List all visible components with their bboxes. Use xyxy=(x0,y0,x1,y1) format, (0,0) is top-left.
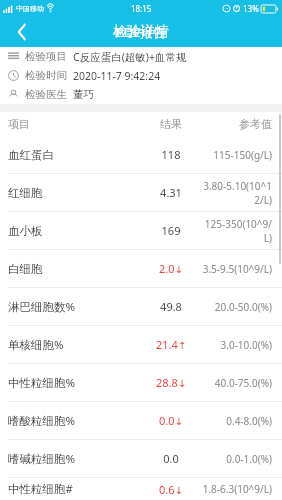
staticText: 0.0↓ xyxy=(140,413,202,428)
staticText: 4.31 xyxy=(140,185,202,200)
staticText: 169 xyxy=(140,223,202,238)
staticText: 18:15 xyxy=(131,3,152,14)
staticText: 21.4↑ xyxy=(140,337,202,352)
staticText: 白细胞 xyxy=(8,262,140,276)
staticText: 嗜碱粒细胞% xyxy=(8,451,140,467)
staticText: 检验医生 xyxy=(25,88,67,101)
staticText: 0.0-1.0(%) xyxy=(202,452,272,466)
button[interactable]: 嗜酸粒细胞% xyxy=(0,402,282,439)
staticText: 中性粒细胞% xyxy=(8,375,140,391)
staticText: 参考值 xyxy=(202,117,272,131)
staticText: 3.0-10.0(%) xyxy=(202,338,272,352)
staticText: 结果 xyxy=(140,117,202,131)
button[interactable]: 血小板 xyxy=(0,212,282,249)
staticText: 嗜酸粒细胞% xyxy=(8,413,140,429)
staticText: 1.8-6.3(10^9/L) xyxy=(202,482,272,496)
staticText: 中性粒细胞# xyxy=(8,481,140,497)
button[interactable]: 单核细胞% xyxy=(0,326,282,363)
staticText: 40.0-75.0(%) xyxy=(202,376,272,390)
button[interactable]: 中性粒细胞% xyxy=(0,364,282,401)
staticText: 淋巴细胞数% xyxy=(8,299,140,315)
staticText: 28.8↓ xyxy=(140,375,202,390)
staticText: 3.80-5.10(10^12/L) xyxy=(202,179,272,207)
staticText: 2.0↓ xyxy=(140,261,202,276)
staticText: 125-350(10^9/L) xyxy=(202,217,272,245)
button[interactable]: PDF报告 xyxy=(0,16,282,47)
staticText: PDF报告 xyxy=(116,23,167,41)
staticText: 检验项目 xyxy=(25,50,67,63)
staticText: 项目 xyxy=(8,117,140,131)
button[interactable]: 红细胞 xyxy=(0,174,282,211)
staticText: 董巧 xyxy=(73,88,94,101)
staticText: 红细胞 xyxy=(8,186,140,200)
staticText: 0.0 xyxy=(140,451,202,466)
staticText: 中国移动 xyxy=(16,4,44,13)
staticText: 20.0-50.0(%) xyxy=(202,300,272,314)
staticText: 0.4-8.0(%) xyxy=(202,414,272,428)
button[interactable]: 嗜碱粒细胞% xyxy=(0,440,282,477)
staticText: 118 xyxy=(140,147,202,162)
staticText: 0.6↓ xyxy=(140,482,202,497)
button[interactable]: 白细胞 xyxy=(0,250,282,287)
staticText: 3.5-9.5(10^9/L) xyxy=(202,262,272,276)
button[interactable]: 中性粒细胞# xyxy=(0,478,282,500)
button[interactable]: Back xyxy=(0,16,44,47)
staticText: 13% xyxy=(243,3,259,14)
staticText: 115-150(g/L) xyxy=(202,148,272,162)
staticText: 血小板 xyxy=(8,224,140,238)
staticText: 血红蛋白 xyxy=(8,148,140,162)
staticText: 单核细胞% xyxy=(8,337,140,353)
staticText: 2020-11-7 9:42:24 xyxy=(73,69,161,83)
staticText: 49.8 xyxy=(140,299,202,314)
button[interactable]: 血红蛋白 xyxy=(0,136,282,173)
staticText: C反应蛋白(超敏)+血常规 xyxy=(73,50,187,64)
staticText: 检验时间 xyxy=(25,69,67,82)
button[interactable]: 淋巴细胞数% xyxy=(0,288,282,325)
staticText: 检验详情 xyxy=(113,23,169,41)
